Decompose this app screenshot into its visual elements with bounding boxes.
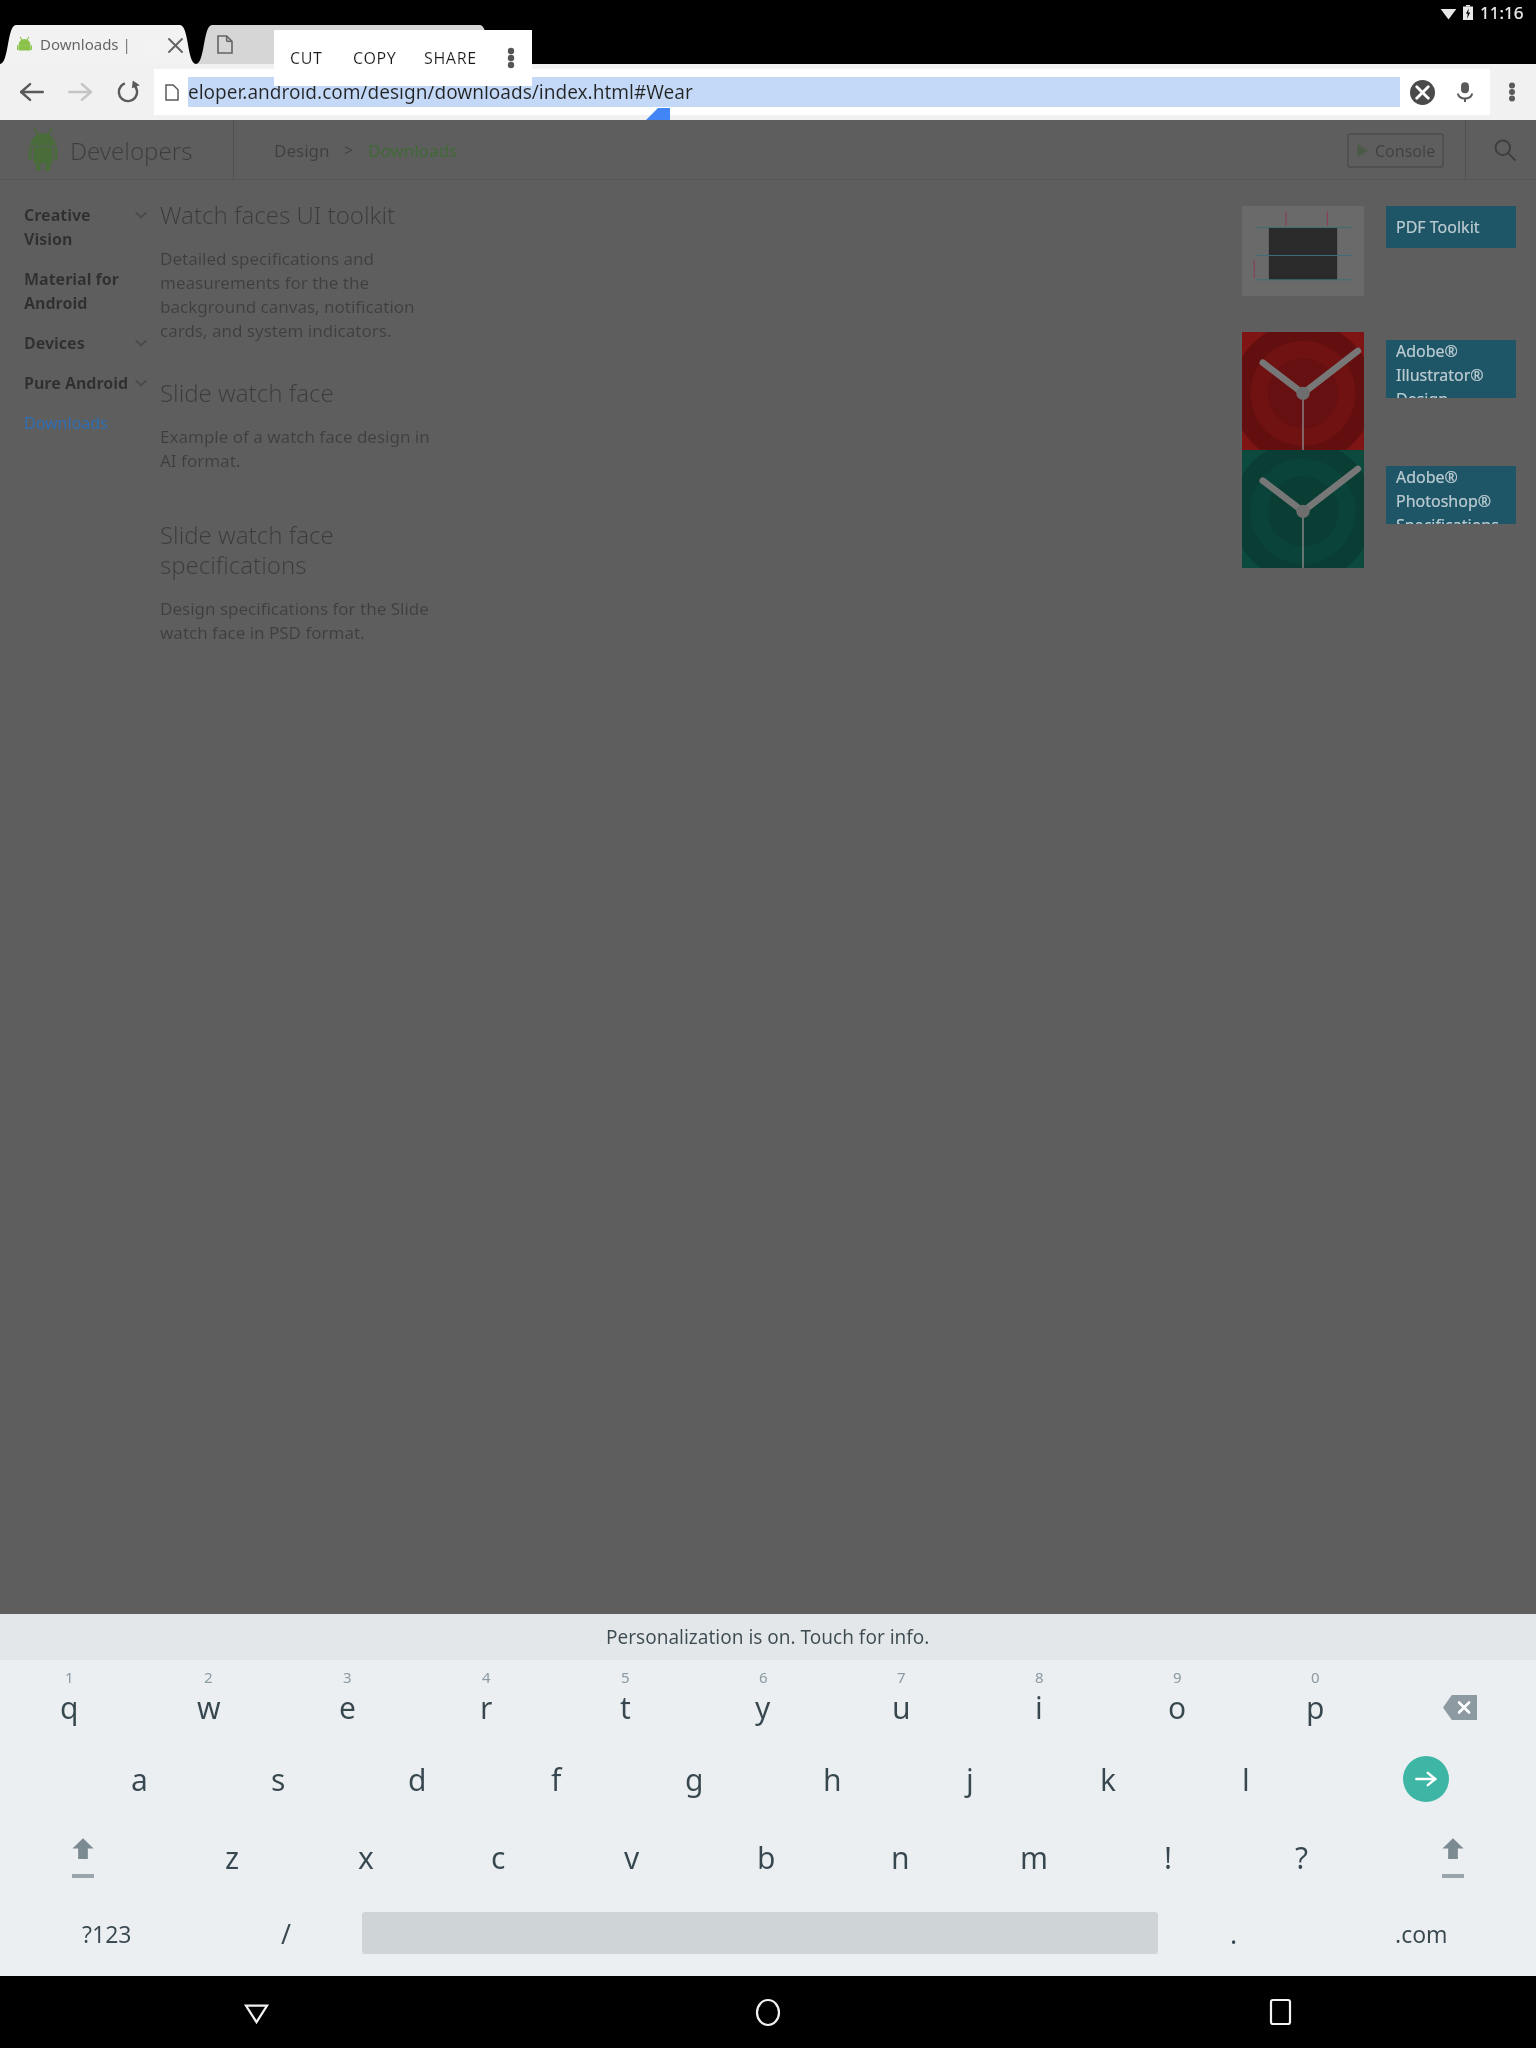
button[interactable]: Close tab [160,30,190,60]
staticText: ?123 [82,1918,132,1949]
button[interactable]: 3 [278,1660,417,1740]
button[interactable]: 9 [1108,1660,1246,1740]
button[interactable]: f [487,1740,625,1818]
staticText: u [892,1687,911,1728]
staticText: Creative Vision [24,204,134,250]
button[interactable]: More options [1490,70,1534,114]
button[interactable]: / [214,1896,358,1970]
button[interactable] [196,25,496,64]
button[interactable]: z [166,1818,299,1896]
staticText: Devices [24,332,134,354]
button[interactable]: a [70,1740,209,1818]
staticText: x [358,1837,374,1878]
button[interactable]: n [833,1818,967,1896]
button[interactable]: Adobe® Photoshop® Specifications [1386,466,1516,524]
button[interactable]: 8 [970,1660,1108,1740]
staticText: Pure Android [24,372,134,394]
button[interactable]: Clear text [1400,70,1444,114]
staticText: k [1100,1759,1117,1800]
staticText: Console [1375,140,1436,162]
staticText: o [1168,1687,1187,1728]
button[interactable]: 4 [417,1660,556,1740]
button[interactable]: m [967,1818,1101,1896]
staticText: COPY [353,47,397,69]
button[interactable]: Downloads [368,139,458,162]
staticText: ? [1295,1837,1309,1878]
button[interactable]: Pure Android [24,372,152,394]
staticText: PDF Toolkit [1396,216,1480,238]
button[interactable]: k [1039,1740,1177,1818]
staticText: Example of a watch face design in AI for… [160,425,430,472]
button[interactable]: Backspace [1384,1660,1536,1740]
staticText: q [60,1687,79,1728]
button[interactable]: Search [1488,133,1522,167]
staticText: Adobe® Illustrator® Design [1396,340,1516,398]
staticText: 5 [621,1667,630,1687]
button[interactable]: Adobe® Illustrator® Design [1386,340,1516,398]
button[interactable]: 1 [0,1660,139,1740]
button[interactable]: g [625,1740,763,1818]
button[interactable]: Design [274,139,330,162]
staticText: Material for Android [24,268,152,314]
staticText: c [491,1837,506,1878]
button[interactable]: c [432,1818,565,1896]
button[interactable]: Shift [1369,1818,1536,1896]
button[interactable]: Voice search [1444,71,1486,113]
button[interactable]: SHARE [411,30,490,86]
button[interactable]: Back [0,1976,512,2048]
button[interactable]: x [299,1818,432,1896]
button[interactable]: .com [1306,1896,1536,1970]
button[interactable]: Reload [104,68,152,116]
button[interactable]: 7 [832,1660,970,1740]
staticText: 8 [1035,1667,1044,1687]
staticText: d [408,1759,427,1800]
button[interactable]: ?123 [0,1896,214,1970]
button[interactable]: s [209,1740,348,1818]
staticText: f [551,1759,562,1800]
button[interactable]: ! [1101,1818,1235,1896]
staticText: 7 [897,1667,906,1687]
staticText: z [225,1837,240,1878]
button[interactable]: b [699,1818,833,1896]
button[interactable]: Go [1315,1740,1536,1818]
button[interactable]: Material for Android [24,268,152,314]
button[interactable]: ? [1235,1818,1369,1896]
button[interactable]: Downloads | Android Developers [0,25,196,64]
button[interactable]: d [348,1740,487,1818]
staticText: e [339,1687,356,1728]
staticText: Downloads | Android Developers [40,34,160,54]
button[interactable]: v [565,1818,699,1896]
button[interactable]: Downloads [24,412,108,434]
button[interactable]: 5 [556,1660,694,1740]
staticText: h [823,1759,842,1800]
button[interactable]: . [1162,1896,1306,1970]
staticText: a [131,1759,148,1800]
button[interactable]: l [1177,1740,1315,1818]
button[interactable]: eloper.android.com/design/downloads/inde… [154,69,1490,115]
button[interactable]: COPY [338,30,411,86]
button[interactable]: Devices [24,332,152,354]
staticText: Developers [70,134,193,167]
button[interactable]: j [901,1740,1039,1818]
button[interactable]: Creative Vision [24,204,152,250]
button[interactable]: CUT [274,30,338,86]
button[interactable]: Home [512,1976,1024,2048]
button[interactable]: PDF Toolkit [1386,206,1516,248]
button[interactable]: Shift [0,1818,166,1896]
button[interactable]: 6 [694,1660,832,1740]
button[interactable]: Recent apps [1024,1976,1536,2048]
button[interactable]: Back [8,68,56,116]
button[interactable]: More selection actions [490,30,532,86]
staticText: . [1230,1915,1238,1952]
staticText: s [271,1759,286,1800]
button[interactable]: h [763,1740,901,1818]
staticText: CUT [290,47,323,69]
button[interactable]: 2 [139,1660,278,1740]
button[interactable]: 0 [1246,1660,1384,1740]
button[interactable]: Forward [56,68,104,116]
button[interactable]: Console [1348,134,1443,167]
button[interactable]: Personalization is on. Touch for info. [0,1614,1536,1660]
staticText: 1 [65,1667,74,1687]
staticText: Design specifications for the Slide watc… [160,597,429,644]
